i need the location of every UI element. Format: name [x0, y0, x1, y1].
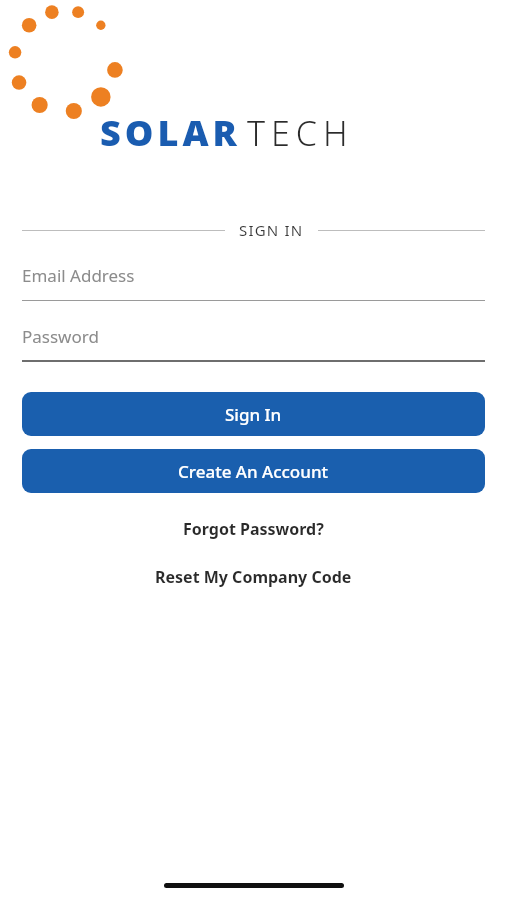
- button[interactable]: Forgot Password?: [0, 512, 507, 546]
- staticText: SOLAR: [100, 108, 241, 157]
- staticText: Forgot Password?: [183, 518, 324, 540]
- staticText: Password: [22, 325, 99, 348]
- staticText: SIGN IN: [239, 220, 304, 240]
- staticText: Create An Account: [178, 460, 329, 483]
- staticText: Sign In: [225, 403, 282, 426]
- staticText: TECH: [247, 110, 354, 156]
- staticText: Reset My Company Code: [155, 566, 352, 588]
- button[interactable]: Sign In: [22, 392, 485, 436]
- button[interactable]: Create An Account: [22, 449, 485, 493]
- button[interactable]: Email Address: [22, 264, 485, 301]
- button[interactable]: Reset My Company Code: [0, 560, 507, 594]
- other: Home gesture bar: [164, 883, 344, 888]
- button[interactable]: Password: [22, 325, 485, 362]
- staticText: Email Address: [22, 264, 135, 287]
